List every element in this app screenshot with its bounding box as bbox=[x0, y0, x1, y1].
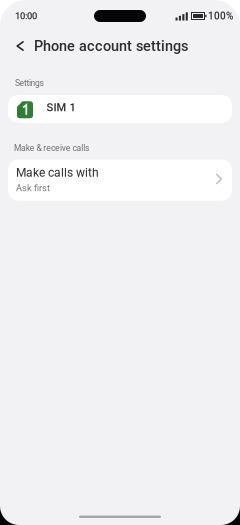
staticText: Phone account settings bbox=[34, 38, 188, 54]
staticText: Ask first bbox=[16, 183, 50, 193]
staticText: 10:00 bbox=[15, 10, 37, 21]
staticText: 100% bbox=[208, 10, 233, 22]
staticText: Make calls with bbox=[16, 165, 99, 180]
staticText: SIM 1 bbox=[46, 101, 75, 114]
staticText: Settings bbox=[15, 78, 43, 88]
button[interactable]: Make calls with bbox=[8, 159, 232, 200]
button[interactable]: SIM 1 bbox=[8, 95, 232, 123]
button[interactable]: Back bbox=[0, 41, 24, 51]
staticText: Make & receive calls bbox=[14, 143, 89, 153]
